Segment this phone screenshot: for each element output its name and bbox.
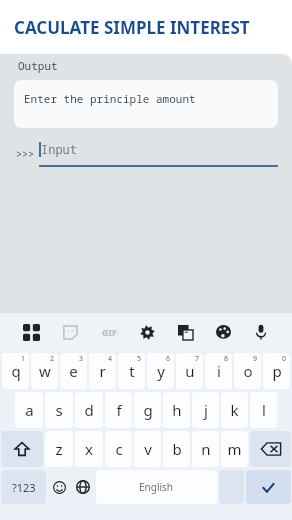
button[interactable]: Backspace <box>250 431 291 467</box>
button[interactable]: l <box>250 392 277 428</box>
staticText: GIF <box>102 326 117 338</box>
button[interactable]: t <box>118 353 145 389</box>
staticText: >>> <box>16 147 34 161</box>
staticText: f <box>116 400 122 420</box>
staticText: w <box>39 361 51 381</box>
button[interactable]: >>> <box>0 141 292 167</box>
staticText: CACULATE SIMPLE INTEREST <box>14 16 250 39</box>
staticText: 9 <box>253 354 258 364</box>
staticText: 1 <box>21 354 26 364</box>
staticText: c <box>115 439 123 459</box>
staticText: a <box>25 400 34 420</box>
button[interactable]: Shift <box>1 431 43 467</box>
button[interactable]: p <box>263 353 290 389</box>
button[interactable]: Emoji <box>47 470 71 504</box>
staticText: 6 <box>166 354 171 364</box>
button[interactable]: ?123 <box>1 470 46 504</box>
staticText: Input <box>41 141 78 157</box>
staticText: s <box>55 400 63 420</box>
staticText: h <box>172 400 182 420</box>
staticText: Output <box>18 58 58 73</box>
staticText: r <box>99 361 106 381</box>
staticText: 2 <box>50 354 55 364</box>
button[interactable]: y <box>147 353 174 389</box>
button[interactable]: Settings <box>128 313 166 351</box>
staticText: p <box>272 361 282 381</box>
staticText: 8 <box>224 354 229 364</box>
button[interactable]: q <box>2 353 29 389</box>
button[interactable]: u <box>176 353 203 389</box>
staticText: b <box>172 439 182 459</box>
staticText: k <box>230 400 239 420</box>
button[interactable]: f <box>105 392 132 428</box>
staticText: m <box>227 439 242 459</box>
staticText: g <box>143 400 153 420</box>
button[interactable]: m <box>221 431 248 467</box>
button[interactable]: n <box>192 431 219 467</box>
staticText: d <box>84 400 94 420</box>
staticText: x <box>85 439 93 459</box>
staticText: j <box>204 400 208 420</box>
staticText: Enter the principle amount <box>24 91 196 106</box>
button[interactable]: z <box>45 431 73 467</box>
staticText: 5 <box>137 354 142 364</box>
staticText: l <box>262 400 266 420</box>
staticText: English <box>139 480 174 494</box>
button[interactable]: d <box>75 392 103 428</box>
staticText: 3 <box>79 354 84 364</box>
button[interactable]: s <box>45 392 73 428</box>
button[interactable]: o <box>234 353 261 389</box>
button[interactable]: k <box>221 392 248 428</box>
button[interactable]: English <box>96 470 217 504</box>
button[interactable]: GIF <box>90 313 128 351</box>
button[interactable]: w <box>31 353 58 389</box>
button[interactable]: Voice input <box>242 313 280 351</box>
button[interactable]: r <box>89 353 116 389</box>
button[interactable]: g <box>134 392 161 428</box>
staticText: o <box>243 361 253 381</box>
staticText: q <box>11 361 21 381</box>
button[interactable]: Translate <box>166 313 204 351</box>
button[interactable]: Theme <box>204 313 242 351</box>
button[interactable]: e <box>60 353 87 389</box>
button[interactable]: i <box>205 353 232 389</box>
staticText: u <box>185 361 195 381</box>
staticText: 4 <box>108 354 113 364</box>
button[interactable]: x <box>75 431 103 467</box>
staticText: e <box>69 361 78 381</box>
staticText: 0 <box>282 354 287 364</box>
button[interactable]: j <box>192 392 219 428</box>
button[interactable]: Change language <box>71 470 95 504</box>
button[interactable]: Enter the principle amount <box>14 80 278 128</box>
button[interactable]: v <box>134 431 161 467</box>
staticText: y <box>157 361 165 381</box>
button[interactable]: Stickers <box>51 313 90 351</box>
staticText: t <box>129 361 135 381</box>
staticText: z <box>55 439 63 459</box>
button[interactable]: h <box>163 392 190 428</box>
staticText: v <box>144 439 152 459</box>
staticText: ?123 <box>12 480 36 495</box>
button[interactable]: a <box>15 392 43 428</box>
button[interactable]: c <box>105 431 132 467</box>
staticText: i <box>217 361 221 381</box>
button[interactable]: b <box>163 431 190 467</box>
button[interactable]: Apps <box>12 313 51 351</box>
staticText: 7 <box>195 354 200 364</box>
staticText: n <box>201 439 211 459</box>
button[interactable]: Enter <box>246 470 291 504</box>
